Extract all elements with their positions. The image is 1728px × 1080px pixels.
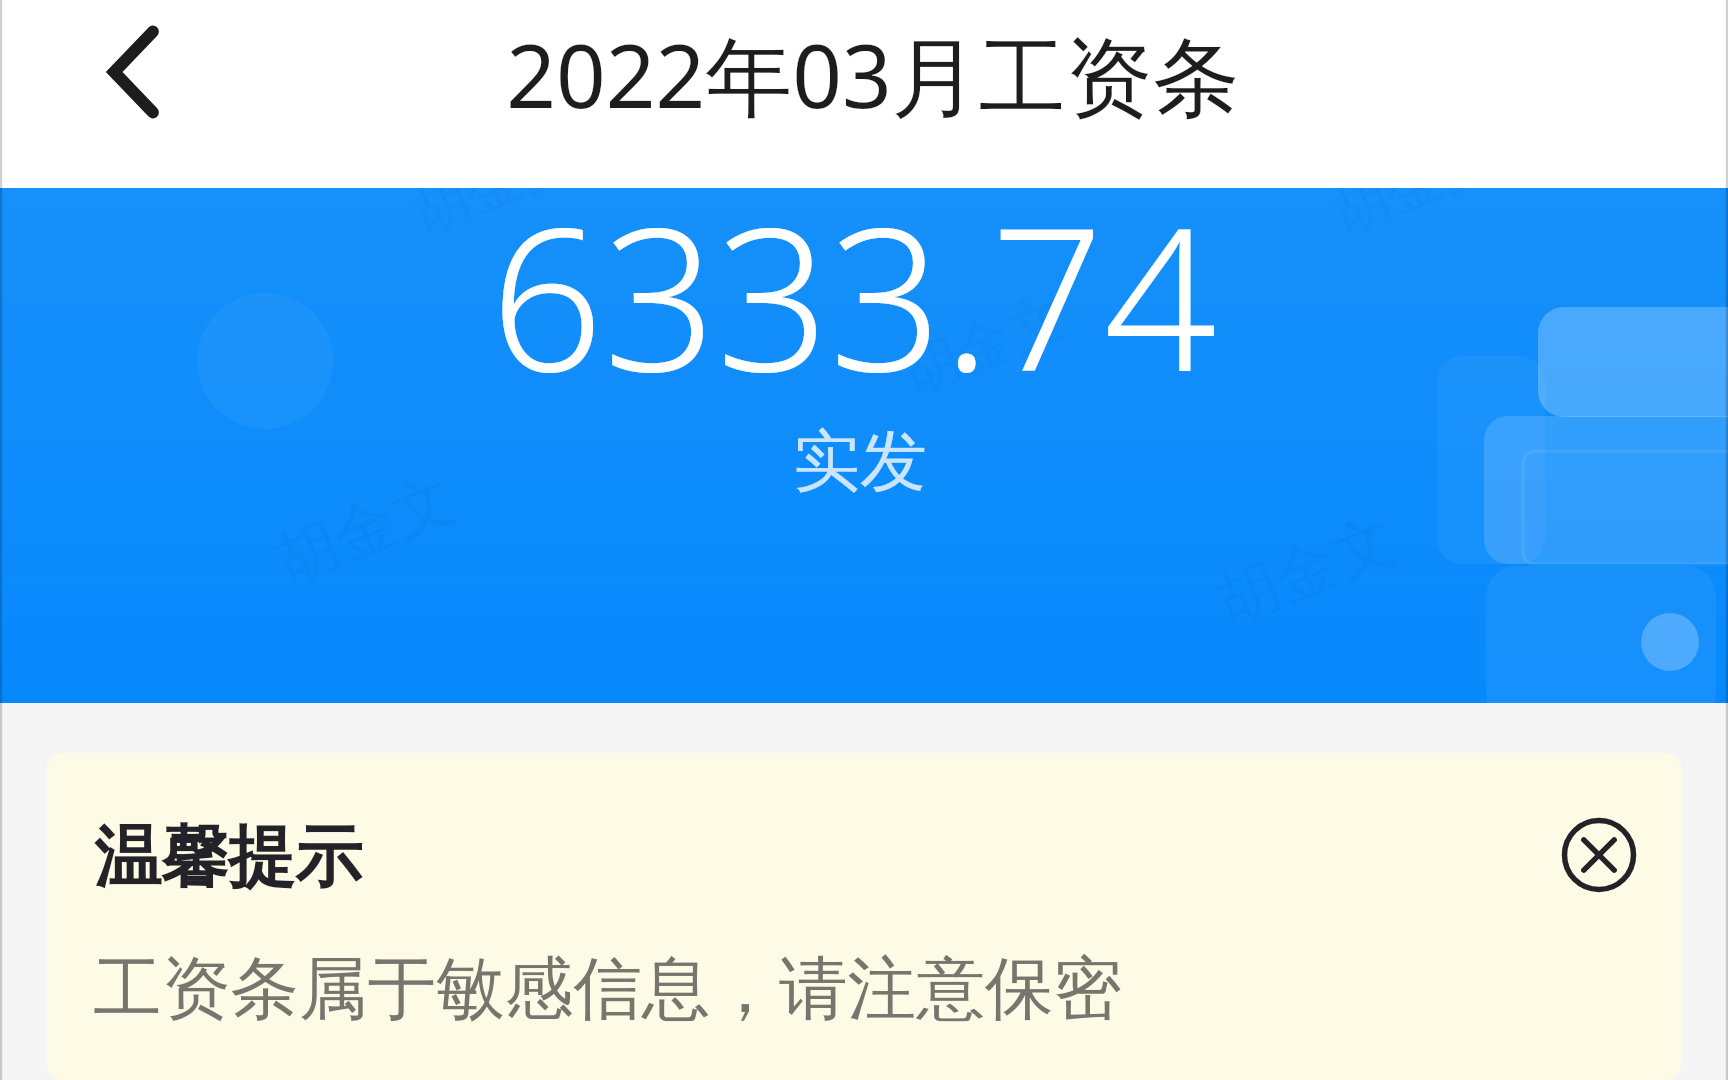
button[interactable]: Back [77, 16, 189, 128]
staticText: 温馨提示 [94, 815, 362, 899]
staticText: 胡金文 [893, 281, 1075, 410]
button[interactable]: Dismiss tip [1553, 809, 1645, 901]
staticText: 工资条属于敏感信息，请注意保密 [93, 946, 1122, 1032]
staticText: 2022年03月工资条 [506, 15, 1240, 134]
button[interactable]: 温馨提示 [47, 753, 1681, 1080]
staticText: 胡金文 [403, 188, 585, 250]
staticText: 6333.74 [490, 188, 1217, 429]
staticText: 实发 [793, 419, 927, 503]
